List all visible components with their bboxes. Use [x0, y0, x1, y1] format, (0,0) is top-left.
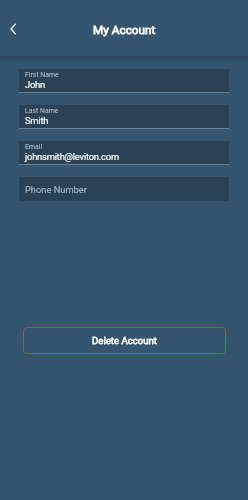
button[interactable]: Last Name	[19, 105, 229, 129]
staticText: Smith	[25, 115, 49, 126]
button[interactable]: Phone Number	[19, 177, 229, 201]
staticText: First Name	[25, 71, 59, 79]
staticText: Delete Account	[92, 335, 157, 346]
button[interactable]: Back	[2, 17, 26, 41]
button[interactable]: First Name	[19, 69, 229, 93]
button[interactable]: Email	[19, 141, 229, 165]
staticText: My Account	[93, 23, 156, 37]
staticText: johnsmith@leviton.com	[25, 151, 119, 162]
staticText: Last Name	[25, 107, 59, 115]
button[interactable]: Delete Account	[23, 327, 226, 354]
staticText: John	[25, 79, 46, 90]
staticText: Email	[25, 143, 43, 151]
staticText: Phone Number	[25, 184, 87, 195]
